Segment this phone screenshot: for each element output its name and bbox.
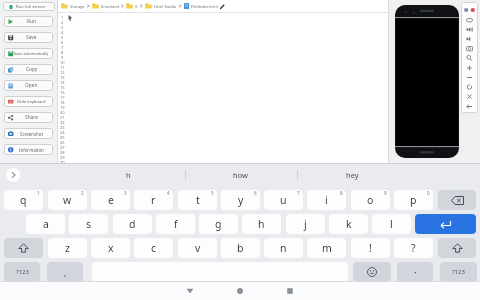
staticText: ?123 xyxy=(16,268,29,276)
staticText: 4 xyxy=(61,30,64,35)
button[interactable] xyxy=(4,238,43,258)
staticText: g xyxy=(215,217,222,231)
button[interactable]: Storage xyxy=(70,4,85,9)
button[interactable]: h xyxy=(108,166,148,184)
staticText: v xyxy=(195,241,201,255)
staticText: 7 xyxy=(61,45,64,50)
button[interactable]: · xyxy=(397,262,433,282)
staticText: 6 xyxy=(61,40,64,45)
button[interactable]: s xyxy=(69,214,108,234)
button[interactable]: j xyxy=(286,214,325,234)
button[interactable]: Save automatically xyxy=(4,48,53,59)
button[interactable]: Run full screen xyxy=(3,2,55,11)
staticText: 8 xyxy=(61,50,64,55)
staticText: Hide keyboard xyxy=(17,99,46,105)
staticText: how xyxy=(233,170,248,180)
button[interactable]: p xyxy=(394,190,433,210)
button[interactable]: w xyxy=(48,190,87,210)
staticText: 9 xyxy=(384,190,387,196)
button[interactable]: q xyxy=(4,190,43,210)
button[interactable]: , xyxy=(47,262,83,282)
button[interactable]: 0 xyxy=(135,4,138,9)
staticText: 25 xyxy=(60,135,65,140)
button[interactable]: m xyxy=(307,238,346,258)
button[interactable]: k xyxy=(329,214,368,234)
staticText: r xyxy=(151,193,156,207)
button[interactable]: Share xyxy=(4,112,53,123)
staticText: k xyxy=(346,217,352,231)
staticText: · xyxy=(414,265,417,279)
button[interactable] xyxy=(183,284,197,298)
staticText: 13 xyxy=(60,75,65,80)
button[interactable]: h xyxy=(242,214,281,234)
button[interactable] xyxy=(438,190,476,210)
button[interactable]: f xyxy=(156,214,195,234)
staticText: Run xyxy=(27,18,36,25)
button[interactable]: FileIndex.html xyxy=(191,4,218,9)
button[interactable]: ?123 xyxy=(440,262,477,282)
staticText: 30 xyxy=(60,160,65,165)
button[interactable]: o xyxy=(351,190,390,210)
button[interactable]: n xyxy=(264,238,303,258)
staticText: p xyxy=(410,193,417,207)
button[interactable] xyxy=(6,168,20,182)
button[interactable] xyxy=(92,262,348,282)
staticText: 5 xyxy=(61,35,64,40)
button[interactable]: l xyxy=(372,214,411,234)
button[interactable] xyxy=(353,262,391,282)
button[interactable]: hey xyxy=(332,166,372,184)
button[interactable]: t xyxy=(178,190,217,210)
button[interactable]: ! xyxy=(351,238,390,258)
button[interactable]: ? xyxy=(394,238,433,258)
button[interactable] xyxy=(438,238,476,258)
button[interactable]: Copy xyxy=(4,64,53,75)
staticText: 24 xyxy=(60,130,65,135)
staticText: h xyxy=(258,217,265,231)
staticText: ! xyxy=(369,241,372,255)
button[interactable] xyxy=(233,284,247,298)
button[interactable] xyxy=(283,284,297,298)
staticText: d xyxy=(129,217,136,231)
button[interactable]: Save xyxy=(4,32,53,43)
staticText: 19 xyxy=(60,105,65,110)
button[interactable]: r xyxy=(134,190,173,210)
button[interactable]: ?123 xyxy=(4,262,40,282)
staticText: n xyxy=(280,241,287,255)
staticText: 14 xyxy=(60,80,65,85)
button[interactable]: Run xyxy=(4,16,53,27)
button[interactable]: b xyxy=(221,238,260,258)
staticText: 9 xyxy=(61,55,64,60)
button[interactable]: Hide keyboard xyxy=(4,96,53,107)
button[interactable]: Information xyxy=(4,144,53,155)
button[interactable]: Screenshot xyxy=(4,128,53,139)
staticText: f xyxy=(174,217,178,231)
staticText: u xyxy=(280,193,287,207)
staticText: c xyxy=(151,241,157,255)
button[interactable] xyxy=(415,214,476,234)
button[interactable]: g xyxy=(199,214,238,234)
button[interactable]: i xyxy=(307,190,346,210)
button[interactable] xyxy=(461,2,478,113)
button[interactable]: v xyxy=(178,238,217,258)
staticText: 8 xyxy=(340,190,343,196)
staticText: ?123 xyxy=(452,268,465,276)
button[interactable]: x xyxy=(91,238,130,258)
staticText: Share xyxy=(25,114,38,121)
staticText: 21 xyxy=(60,115,65,120)
button[interactable]: y xyxy=(221,190,260,210)
button[interactable]: d xyxy=(113,214,152,234)
button[interactable]: Open xyxy=(4,80,53,91)
button[interactable]: Emulated xyxy=(101,4,119,9)
button[interactable]: Html Studio xyxy=(154,4,177,9)
button[interactable]: how xyxy=(220,166,260,184)
button[interactable]: u xyxy=(264,190,303,210)
button[interactable]: c xyxy=(134,238,173,258)
button[interactable] xyxy=(395,5,459,158)
button[interactable]: e xyxy=(91,190,130,210)
staticText: 16 xyxy=(60,90,65,95)
staticText: j xyxy=(304,217,307,231)
button[interactable]: a xyxy=(26,214,65,234)
staticText: 18 xyxy=(60,100,65,105)
staticText: m xyxy=(322,241,332,255)
button[interactable]: z xyxy=(48,238,87,258)
